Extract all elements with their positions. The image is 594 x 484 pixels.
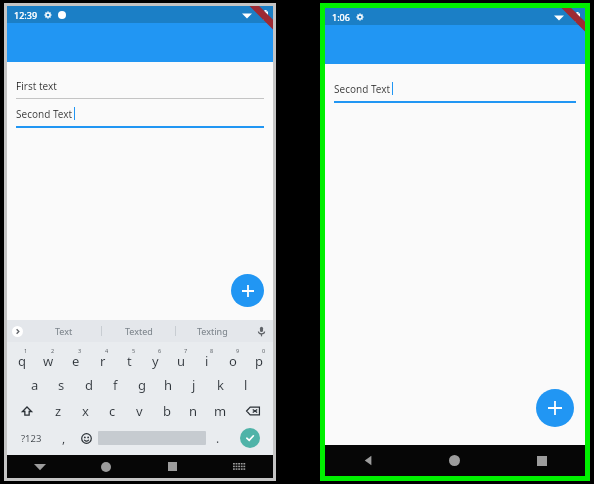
staticText: r [100,352,106,370]
staticText: 4 [105,347,109,354]
button[interactable]: Backspace [234,398,271,424]
staticText: Second Text [16,107,73,121]
staticText: v [136,402,143,420]
button[interactable]: c [99,398,126,424]
button[interactable]: Back [325,445,411,476]
button[interactable]: k [207,372,233,398]
staticText: 5 [132,347,136,354]
staticText: m [214,402,227,420]
staticText: x [82,402,89,420]
button[interactable]: ?123 [10,424,52,452]
staticText: 1:06 [332,11,350,23]
button[interactable]: s [48,372,75,398]
button[interactable]: n [180,398,207,424]
staticText: 2 [51,347,55,354]
button[interactable]: 3 [62,346,89,372]
button[interactable]: Texting [176,320,249,342]
staticText: k [217,376,224,394]
button[interactable]: l [233,372,259,398]
button[interactable]: 1 [8,346,35,372]
button[interactable]: Recents [139,455,206,478]
button[interactable]: 6 [142,346,168,372]
staticText: s [58,376,65,394]
staticText: g [138,376,146,394]
button[interactable]: 4 [89,346,116,372]
staticText: Texting [197,325,228,337]
button[interactable]: j [181,372,207,398]
button[interactable]: Emoji [75,424,98,452]
staticText: First text [16,79,57,93]
button[interactable]: m [207,398,234,424]
staticText: Text [55,325,73,337]
button[interactable]: d [75,372,102,398]
staticText: p [255,352,263,370]
button[interactable]: Recents [498,445,585,476]
staticText: t [127,352,132,370]
button[interactable]: 8 [194,346,220,372]
staticText: 12:39 [14,9,38,21]
button[interactable]: f [102,372,129,398]
staticText: n [189,402,198,420]
staticText: z [55,402,62,420]
staticText: j [192,376,196,394]
staticText: e [72,352,80,370]
button[interactable]: x [72,398,99,424]
button[interactable]: . [206,424,229,452]
staticText: 9 [236,347,240,354]
button[interactable]: z [45,398,72,424]
button[interactable]: 7 [168,346,194,372]
button[interactable]: h [155,372,181,398]
staticText: . [216,430,220,446]
button[interactable]: 9 [220,346,246,372]
button[interactable]: Add [536,389,574,427]
staticText: u [177,352,186,370]
staticText: q [18,352,26,370]
staticText: ?123 [21,432,42,445]
staticText: h [164,376,173,394]
button[interactable]: Switch keyboard [206,455,273,478]
button[interactable]: Done [240,428,260,448]
staticText: y [152,352,159,370]
staticText: 1 [24,347,28,354]
button[interactable]: Text [27,320,101,342]
staticText: a [31,376,39,394]
button[interactable]: Texted [102,320,175,342]
staticText: d [85,376,93,394]
button[interactable]: Add [231,274,264,307]
staticText: c [109,402,116,420]
button[interactable]: 5 [116,346,142,372]
staticText: , [62,430,66,446]
staticText: 8 [210,347,214,354]
button[interactable]: Back [7,455,73,478]
button[interactable]: g [129,372,155,398]
staticText: l [244,376,248,394]
button[interactable]: Home [411,445,498,476]
staticText: f [113,376,118,394]
button[interactable]: , [52,424,75,452]
button[interactable]: Home [73,455,139,478]
staticText: w [43,352,54,370]
button[interactable]: a [21,372,48,398]
button[interactable]: b [153,398,180,424]
button[interactable]: Expand [7,320,27,342]
button[interactable]: Voice input [249,320,273,342]
staticText: b [163,402,171,420]
staticText: 6 [158,347,162,354]
button[interactable]: 0 [246,346,272,372]
staticText: 3 [78,347,82,354]
staticText: 0 [262,347,266,354]
button[interactable]: v [126,398,153,424]
button[interactable]: 2 [35,346,62,372]
staticText: 7 [184,347,188,354]
button[interactable]: Shift [9,398,45,424]
staticText: Second Text [334,82,391,96]
staticText: i [205,352,209,370]
staticText: Texted [125,325,153,337]
staticText: o [229,352,237,370]
